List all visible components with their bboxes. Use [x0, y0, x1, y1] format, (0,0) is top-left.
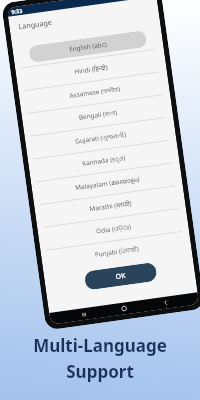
button[interactable]: Odia (ଓଡ଼ିଆ)	[37, 207, 189, 250]
staticText: Support	[66, 360, 134, 383]
button[interactable]: English (abc)	[12, 25, 164, 68]
button[interactable]: Recent apps	[75, 307, 92, 321]
button[interactable]: Bengali (বাংলা)	[21, 93, 173, 137]
staticText: Assamese (অসমীয়া)	[69, 84, 121, 100]
staticText: Marathi (मराठी)	[88, 198, 132, 213]
staticText: Punjabi (ਪੰਜਾਬੀ)	[94, 244, 140, 259]
button[interactable]: Assamese (অসমীয়া)	[18, 70, 170, 114]
staticText: Bengali (বাংলা)	[78, 108, 118, 122]
button[interactable]: OK	[84, 262, 158, 291]
staticText: Language	[18, 17, 53, 31]
button[interactable]: Malayalam (മലയാളം)	[31, 161, 183, 205]
button[interactable]: Kannada (ಕನ್ನಡ)	[28, 139, 179, 182]
staticText: Malayalam (മലയാളം)	[74, 174, 140, 192]
button[interactable]: Gujarati (ગુજરાતી)	[25, 116, 176, 159]
staticText: Multi-Language	[33, 334, 167, 357]
staticText: Hindi (हिन्दी)	[73, 62, 108, 76]
staticText: English (abc)	[68, 39, 107, 54]
staticText: Odia (ଓଡ଼ିଆ)	[96, 222, 131, 236]
button[interactable]: Back	[157, 296, 174, 310]
button[interactable]: Punjabi (ਪੰਜਾਬੀ)	[40, 230, 192, 273]
button[interactable]: Hindi (हिन्दी)	[15, 48, 167, 91]
staticText: 9:33	[11, 7, 23, 15]
button[interactable]: Home	[115, 301, 133, 316]
staticText: Kannada (ಕನ್ನಡ)	[81, 153, 126, 168]
staticText: OK	[115, 271, 126, 282]
button[interactable]: Marathi (मराठी)	[34, 184, 186, 228]
staticText: Gujarati (ગુજરાતી)	[74, 130, 127, 146]
